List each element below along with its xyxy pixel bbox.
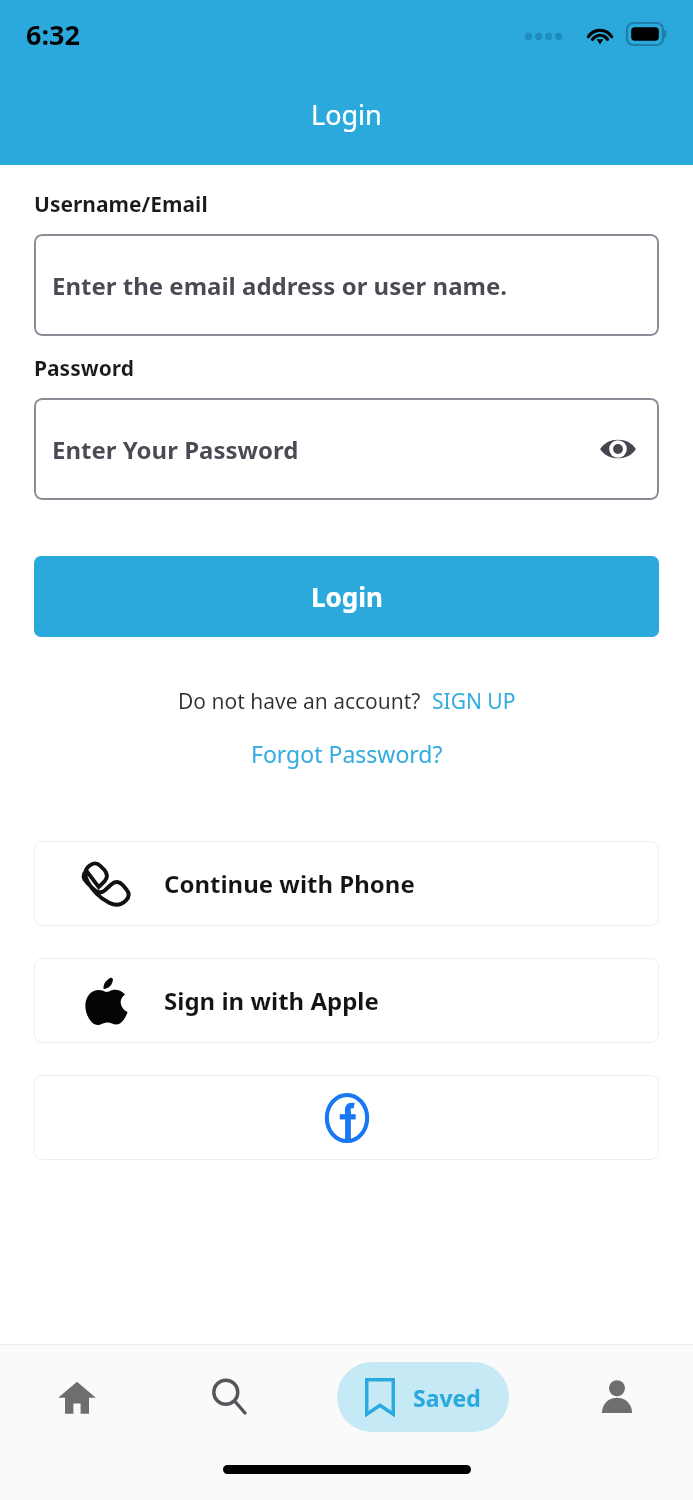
staticText: Forgot Password? <box>251 738 443 769</box>
button[interactable]: Saved <box>337 1362 509 1432</box>
staticText: Continue with Phone <box>164 867 415 900</box>
staticText: Enter the email address or user name. <box>52 269 507 302</box>
button[interactable]: Home <box>0 1345 153 1448</box>
staticText: Do not have an account? <box>178 687 421 716</box>
button[interactable]: Continue with Phone <box>34 841 659 926</box>
staticText: Enter Your Password <box>52 433 299 466</box>
button[interactable]: Sign in with Apple <box>34 958 659 1043</box>
button[interactable]: Enter the email address or user name. <box>34 234 659 336</box>
staticText: SIGN UP <box>432 687 516 716</box>
button[interactable]: Search <box>153 1345 305 1448</box>
button[interactable]: Enter Your Password <box>34 398 659 500</box>
staticText: Sign in with Apple <box>164 984 379 1017</box>
button[interactable]: Forgot Password? <box>251 738 443 769</box>
staticText: Saved <box>413 1382 481 1413</box>
button[interactable]: SIGN UP <box>432 687 516 716</box>
button[interactable]: Sign in with Facebook <box>34 1075 659 1160</box>
staticText: Login <box>311 579 383 614</box>
staticText: Login <box>311 96 382 133</box>
button[interactable]: Login <box>34 556 659 637</box>
staticText: 6:32 <box>26 16 80 53</box>
button[interactable]: Profile <box>541 1345 693 1448</box>
staticText: Password <box>34 354 135 383</box>
button[interactable]: Show password <box>595 426 641 472</box>
staticText: Username/Email <box>34 190 208 219</box>
